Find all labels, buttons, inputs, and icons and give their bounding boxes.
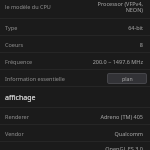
staticText: Vendor bbox=[5, 130, 24, 137]
staticText: Renderer bbox=[5, 113, 29, 120]
staticText: Information essentielle bbox=[5, 75, 65, 82]
staticText: Adreno (TM) 405 bbox=[100, 113, 143, 120]
button[interactable]: Coeurs bbox=[0, 36, 150, 53]
staticText: le modèle du CPU bbox=[5, 3, 51, 10]
staticText: 8 bbox=[139, 41, 143, 48]
staticText: affichage bbox=[5, 93, 36, 103]
staticText: Type bbox=[5, 24, 18, 31]
button[interactable]: Vendor bbox=[0, 125, 150, 142]
button[interactable]: Fréquence bbox=[0, 53, 150, 70]
staticText: plan bbox=[122, 75, 133, 82]
staticText: 64-bit bbox=[128, 24, 143, 31]
staticText: OpenGL ES 3.0 bbox=[105, 145, 143, 150]
button[interactable]: plan bbox=[107, 73, 147, 84]
button[interactable]: Information essentielle bbox=[0, 70, 150, 87]
button[interactable]: Type bbox=[0, 19, 150, 36]
staticText: Coeurs bbox=[5, 41, 24, 48]
staticText: 200.0 ~ 1497.6 MHz bbox=[92, 58, 143, 65]
staticText: Processor (VFPv4, NEON) bbox=[97, 0, 143, 14]
staticText: Fréquence bbox=[5, 58, 33, 65]
button[interactable]: OpenGL ES 3.0 bbox=[0, 144, 150, 150]
button[interactable]: Renderer bbox=[0, 108, 150, 125]
button[interactable]: le modèle du CPU bbox=[0, 0, 150, 16]
staticText: Qualcomm bbox=[114, 130, 143, 137]
